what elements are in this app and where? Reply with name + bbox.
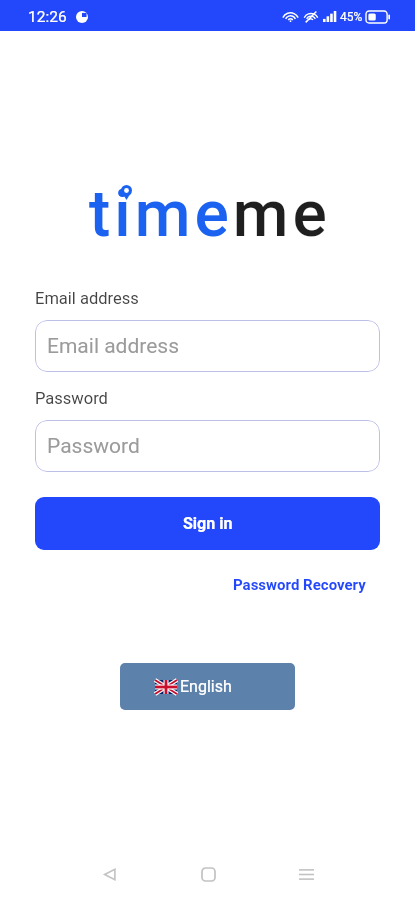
- staticText: Email address: [47, 334, 180, 359]
- staticText: English: [180, 677, 232, 696]
- button[interactable]: Password: [35, 420, 380, 472]
- staticText: 12:26: [28, 8, 67, 26]
- button[interactable]: Sign in: [35, 497, 380, 550]
- staticText: Password: [47, 434, 140, 459]
- button[interactable]: English: [120, 663, 295, 710]
- staticText: timeme: [89, 177, 331, 252]
- staticText: Sign in: [183, 514, 233, 533]
- button[interactable]: Password Recovery: [227, 574, 380, 596]
- button[interactable]: Home: [159, 850, 257, 898]
- staticText: Email address: [35, 289, 139, 308]
- button[interactable]: Recent apps: [257, 850, 355, 898]
- button[interactable]: Back: [60, 850, 159, 898]
- staticText: Password Recovery: [233, 576, 366, 594]
- button[interactable]: Email address: [35, 320, 380, 372]
- staticText: Password: [35, 389, 108, 408]
- staticText: 45%: [340, 10, 363, 24]
